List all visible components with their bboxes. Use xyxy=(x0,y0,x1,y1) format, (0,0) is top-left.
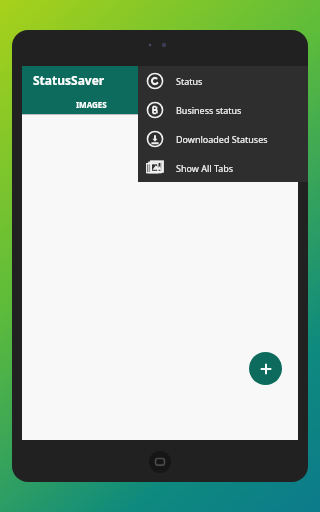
button[interactable]: Business status xyxy=(138,95,308,124)
button[interactable]: Downloaded Statuses xyxy=(138,124,308,153)
button[interactable]: Show All Tabs xyxy=(138,153,308,182)
staticText: Business status xyxy=(176,104,242,116)
staticText: IMAGES xyxy=(76,99,107,110)
staticText: Show All Tabs xyxy=(176,162,234,174)
button[interactable]: IMAGES xyxy=(22,94,160,114)
staticText: Downloaded Statuses xyxy=(176,133,268,145)
button[interactable] xyxy=(160,94,298,114)
button[interactable]: Home xyxy=(149,451,171,473)
staticText: StatusSaver xyxy=(33,72,105,88)
button[interactable]: Add xyxy=(249,352,282,385)
staticText: Status xyxy=(176,75,203,87)
button[interactable]: Status xyxy=(138,66,308,95)
